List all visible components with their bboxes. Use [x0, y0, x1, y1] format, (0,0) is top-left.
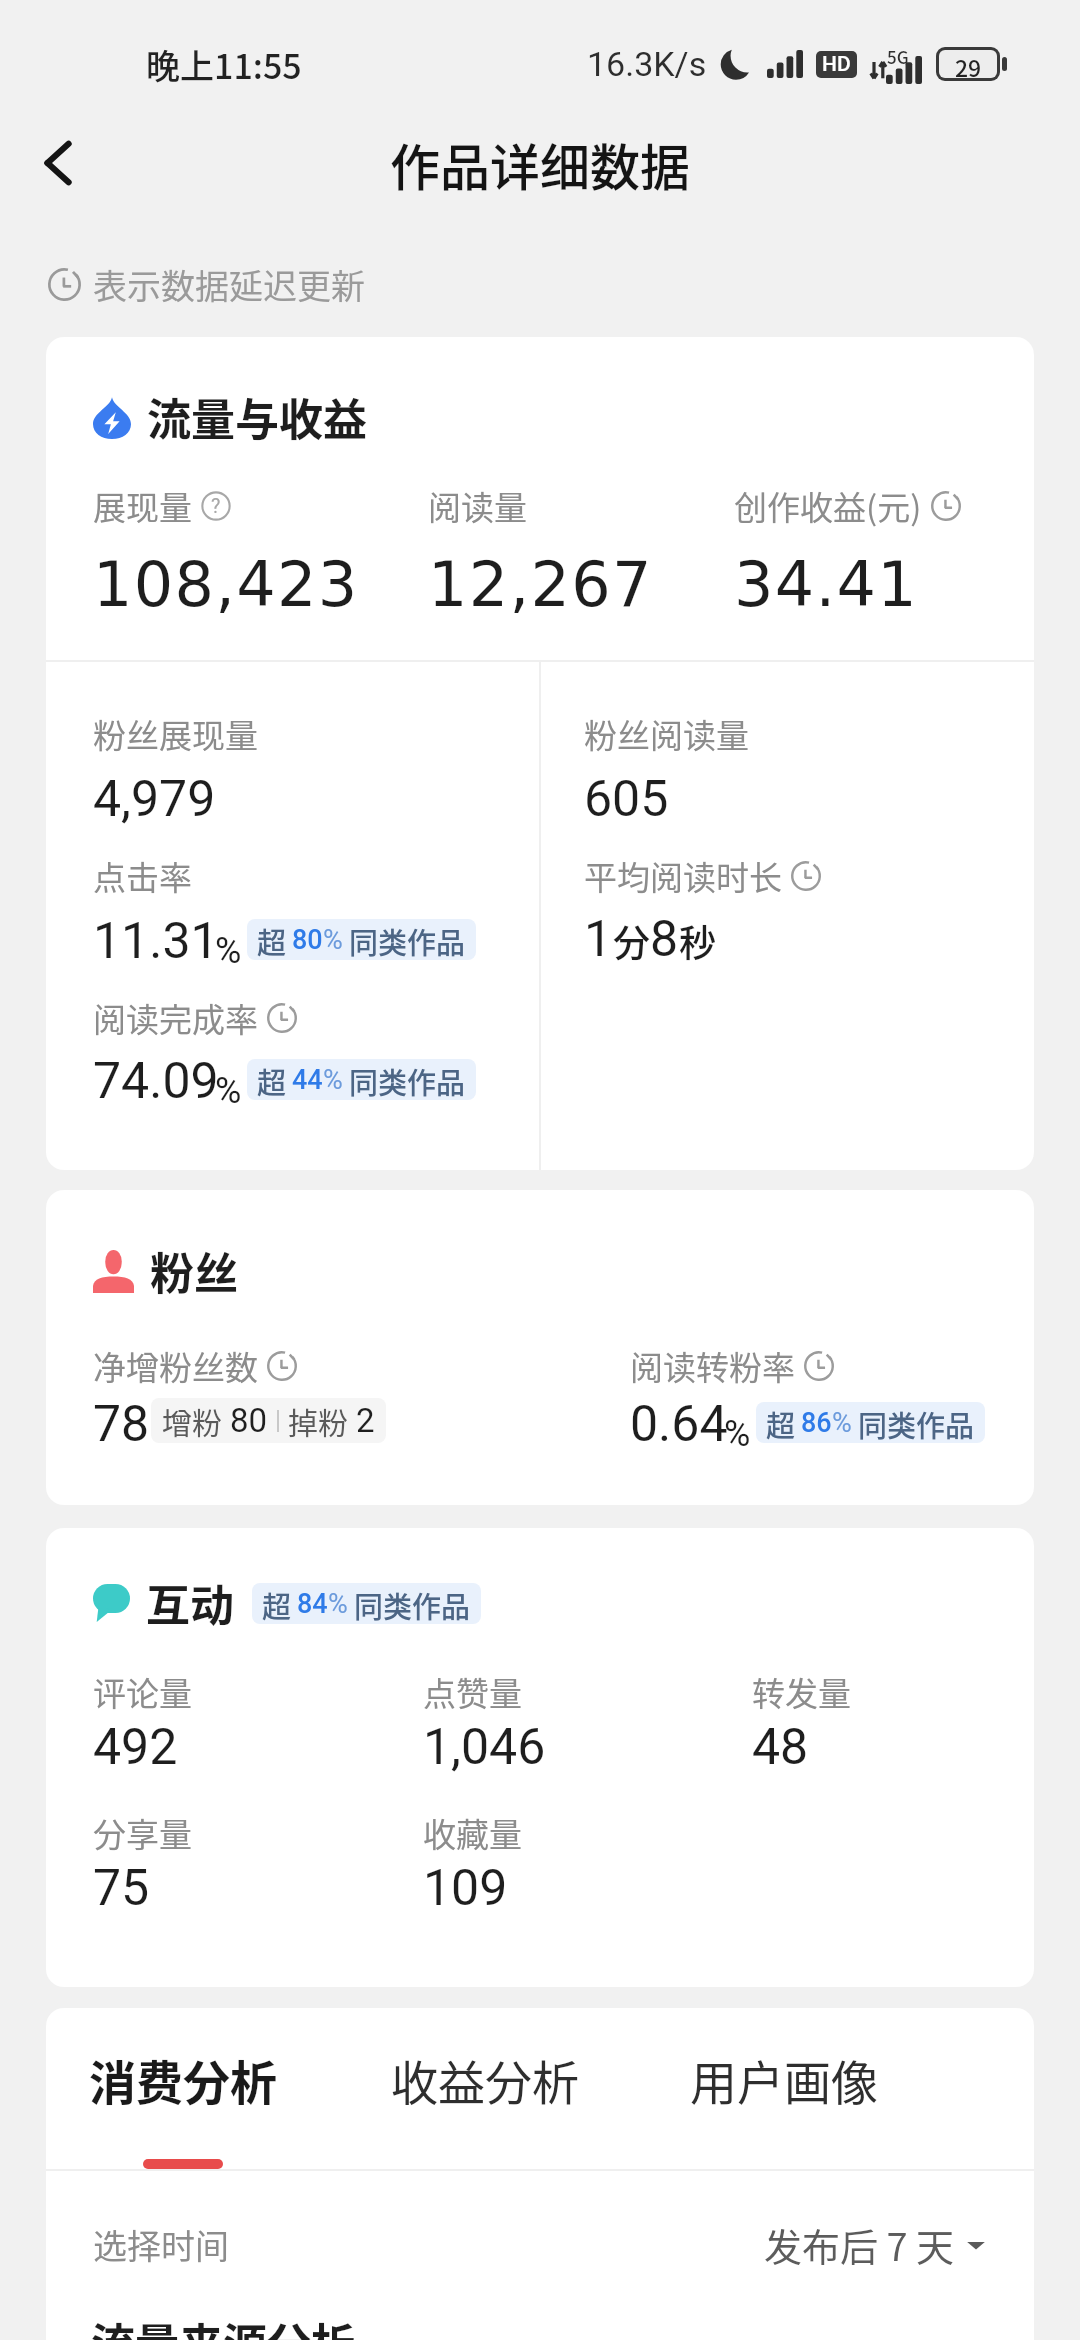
staticText: 粉丝展现量: [93, 710, 258, 758]
staticText: 16.3K/s: [587, 44, 707, 84]
staticText: %: [215, 930, 242, 972]
staticText: 收藏量: [423, 1809, 522, 1857]
staticText: 同类作品: [349, 1060, 466, 1099]
staticText: 109: [423, 1859, 508, 1918]
staticText: 同类作品: [858, 1403, 975, 1442]
staticText: 选择时间: [93, 2220, 229, 2269]
staticText: 84: [297, 1588, 328, 1620]
button[interactable]: 发布后 7 天: [764, 2217, 987, 2272]
staticText: ?: [211, 495, 221, 518]
staticText: %: [832, 1407, 852, 1439]
staticText: 分: [613, 914, 650, 968]
staticText: 阅读转粉率: [630, 1342, 795, 1390]
staticText: 超: [257, 920, 287, 959]
staticText: %: [328, 1588, 348, 1620]
staticText: 创作收益(元): [734, 482, 922, 530]
staticText: 展现量: [93, 482, 192, 530]
staticText: 流量与收益: [147, 385, 367, 449]
staticText: 表示数据延迟更新: [93, 260, 365, 309]
staticText: 阅读量: [428, 482, 527, 530]
staticText: 超: [262, 1584, 292, 1623]
staticText: 互动: [146, 1571, 234, 1635]
staticText: 转发量: [752, 1668, 851, 1716]
staticText: 12,267: [428, 548, 653, 620]
staticText: 29: [955, 50, 982, 78]
staticText: 流量来源分析: [91, 2310, 355, 2340]
button[interactable]: 消费分析: [89, 2045, 277, 2169]
staticText: 5G: [887, 44, 909, 69]
staticText: 86: [801, 1407, 832, 1439]
staticText: 2: [356, 1401, 375, 1440]
staticText: 超: [766, 1403, 796, 1442]
staticText: 34.41: [734, 548, 918, 620]
staticText: %: [323, 924, 343, 956]
staticText: 粉丝阅读量: [584, 710, 749, 758]
staticText: 平均阅读时长: [584, 852, 782, 900]
staticText: 44: [292, 1064, 323, 1096]
staticText: 4,979: [93, 770, 216, 829]
staticText: 发布后 7 天: [764, 2217, 955, 2272]
staticText: 秒: [679, 914, 716, 968]
button[interactable]: What is impressions: [201, 491, 231, 521]
staticText: 点赞量: [423, 1668, 522, 1716]
staticText: 同类作品: [349, 920, 466, 959]
staticText: %: [724, 1413, 751, 1455]
staticText: 分享量: [93, 1809, 192, 1857]
staticText: 超: [257, 1060, 287, 1099]
staticText: 消费分析: [89, 2045, 277, 2113]
staticText: 点击率: [93, 852, 192, 900]
staticText: 用户画像: [690, 2045, 878, 2113]
staticText: 8: [650, 910, 679, 969]
staticText: 605: [584, 770, 669, 829]
staticText: 收益分析: [391, 2045, 579, 2113]
staticText: 评论量: [93, 1668, 192, 1716]
staticText: 78: [93, 1395, 150, 1454]
staticText: 48: [752, 1718, 809, 1777]
staticText: 80: [230, 1401, 268, 1440]
staticText: 1,046: [423, 1718, 546, 1777]
staticText: 掉粉: [288, 1399, 348, 1442]
staticText: 同类作品: [354, 1584, 471, 1623]
staticText: 80: [292, 924, 323, 956]
button[interactable]: 收益分析: [391, 2045, 579, 2169]
staticText: 1: [584, 910, 613, 969]
staticText: 阅读完成率: [93, 994, 258, 1042]
staticText: 492: [93, 1718, 178, 1777]
button[interactable]: 用户画像: [690, 2045, 878, 2169]
staticText: 108,423: [93, 548, 359, 620]
staticText: 作品详细数据: [390, 128, 690, 198]
staticText: %: [215, 1070, 242, 1112]
staticText: 增粉: [162, 1399, 222, 1442]
staticText: HD: [822, 52, 851, 77]
staticText: 净增粉丝数: [93, 1342, 258, 1390]
staticText: 晚上11:55: [146, 40, 302, 89]
staticText: 75: [93, 1859, 150, 1918]
button[interactable]: Back: [16, 128, 102, 198]
staticText: 粉丝: [150, 1239, 238, 1303]
staticText: %: [323, 1064, 343, 1096]
staticText: 0.64: [630, 1395, 728, 1454]
staticText: 74.09: [93, 1052, 219, 1111]
staticText: 11.31: [93, 912, 219, 971]
